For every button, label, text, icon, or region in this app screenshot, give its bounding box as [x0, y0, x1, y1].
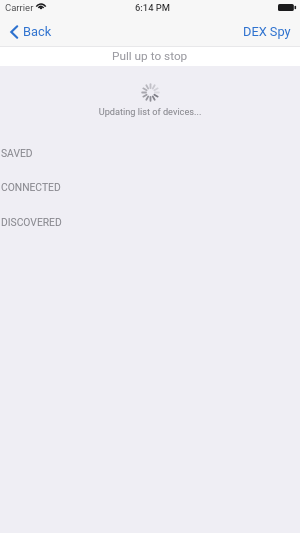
staticText: Updating list of devices...: [0, 106, 300, 117]
staticText: CONNECTED: [1, 181, 61, 193]
staticText: Carrier: [5, 2, 34, 13]
staticText: 6:14 PM: [135, 2, 171, 13]
staticText: DEX Spy: [243, 24, 291, 39]
button[interactable]: DEX Spy: [234, 20, 300, 43]
staticText: Pull up to stop: [112, 49, 188, 63]
other: Back: [10, 25, 18, 39]
staticText: SAVED: [1, 147, 33, 159]
button[interactable]: Back: [0, 20, 60, 43]
staticText: Back: [23, 24, 52, 39]
staticText: DISCOVERED: [1, 216, 62, 228]
